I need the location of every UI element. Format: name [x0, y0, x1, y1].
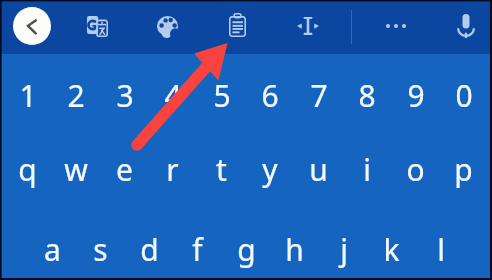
button[interactable]: 3	[100, 58, 149, 132]
button[interactable]: Translate	[76, 5, 119, 48]
staticText: 1	[19, 75, 37, 116]
staticText: p	[454, 149, 473, 190]
button[interactable]: f	[173, 212, 222, 280]
button[interactable]: Clipboard	[218, 2, 257, 48]
button[interactable]: y	[245, 132, 294, 206]
staticText: 9	[407, 75, 425, 116]
staticText: y	[262, 149, 278, 190]
staticText: g	[237, 229, 256, 270]
button[interactable]: 8	[342, 58, 391, 132]
button[interactable]: h	[270, 212, 319, 280]
button[interactable]: 5	[197, 58, 246, 132]
button[interactable]: 1	[3, 58, 52, 132]
button[interactable]: s	[76, 212, 125, 280]
button[interactable]: Move cursor	[286, 6, 330, 46]
staticText: 5	[213, 75, 231, 116]
staticText: u	[309, 149, 328, 190]
button[interactable]: e	[100, 132, 149, 206]
button[interactable]: k	[367, 212, 416, 280]
staticText: f	[192, 229, 203, 270]
staticText: a	[44, 229, 61, 270]
staticText: o	[406, 149, 425, 190]
staticText: 7	[310, 75, 328, 116]
staticText: d	[140, 229, 159, 270]
button[interactable]: d	[125, 212, 174, 280]
button[interactable]: More options	[375, 13, 417, 39]
button[interactable]: 6	[245, 58, 294, 132]
button[interactable]: 2	[51, 58, 100, 132]
staticText: 6	[261, 75, 279, 116]
staticText: w	[64, 149, 88, 190]
staticText: j	[340, 229, 348, 270]
button[interactable]: u	[294, 132, 343, 206]
staticText: 0	[455, 75, 473, 116]
button[interactable]: p	[439, 132, 488, 206]
staticText: s	[93, 229, 108, 270]
staticText: t	[216, 149, 227, 190]
staticText: i	[363, 149, 371, 190]
button[interactable]: Voice input	[446, 3, 486, 49]
button[interactable]: l	[416, 212, 465, 280]
button[interactable]: j	[319, 212, 368, 280]
button[interactable]: Theme	[146, 5, 189, 49]
staticText: 8	[358, 75, 376, 116]
button[interactable]: Back	[13, 7, 51, 45]
staticText: r	[166, 149, 179, 190]
button[interactable]: q	[3, 132, 52, 206]
staticText: k	[383, 229, 400, 270]
button[interactable]: 0	[439, 58, 488, 132]
button[interactable]: 9	[391, 58, 440, 132]
staticText: 2	[67, 75, 85, 116]
staticText: 3	[116, 75, 134, 116]
button[interactable]: w	[51, 132, 100, 206]
staticText: q	[18, 149, 37, 190]
staticText: e	[116, 149, 133, 190]
button[interactable]: t	[197, 132, 246, 206]
staticText: h	[285, 229, 304, 270]
staticText: 4	[164, 75, 182, 116]
button[interactable]: 7	[294, 58, 343, 132]
button[interactable]: 4	[148, 58, 197, 132]
staticText: l	[437, 229, 445, 270]
button[interactable]: a	[28, 212, 77, 280]
button[interactable]: g	[222, 212, 271, 280]
button[interactable]: r	[148, 132, 197, 206]
button[interactable]: i	[342, 132, 391, 206]
button[interactable]: o	[391, 132, 440, 206]
